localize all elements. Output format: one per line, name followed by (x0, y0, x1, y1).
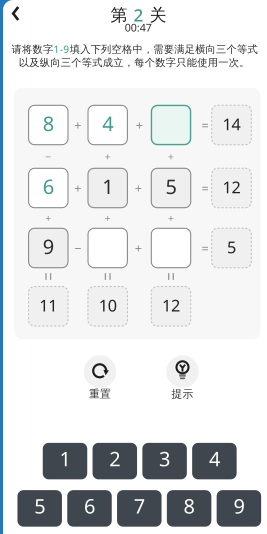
staticText: 以及纵向三个等式成立，每个数字只能使用一次。 (19, 56, 249, 69)
staticText: + (136, 116, 143, 134)
staticText: 3 (159, 445, 170, 472)
staticText: 5 (165, 173, 176, 200)
staticText: + (168, 211, 174, 225)
staticText: 4 (209, 445, 220, 472)
button[interactable]: 9 (217, 490, 261, 527)
staticText: 第 (110, 4, 127, 26)
button[interactable]: 7 (117, 490, 162, 527)
staticText: 5 (227, 236, 236, 258)
staticText: 12 (222, 176, 240, 198)
staticText: 9 (43, 233, 54, 260)
staticText: 1 (59, 445, 70, 472)
button[interactable]: Back (2, 0, 28, 26)
staticText: + (135, 239, 142, 257)
staticText: 8 (43, 110, 54, 137)
button[interactable]: 1 (43, 443, 87, 479)
staticText: + (45, 211, 51, 225)
button[interactable]: 4 (192, 443, 237, 479)
button[interactable]: 空格 (87, 228, 128, 268)
staticText: + (105, 211, 111, 225)
button[interactable]: 3 (142, 443, 187, 479)
staticText: 2 (133, 3, 143, 27)
button[interactable]: 2 (92, 443, 137, 479)
staticText: 4 (102, 110, 113, 137)
staticText: = (201, 239, 208, 257)
button[interactable]: 已选空格 (151, 105, 191, 145)
staticText: 6 (84, 492, 95, 519)
staticText: 7 (134, 492, 145, 519)
button[interactable]: 8 (167, 490, 211, 527)
staticText: + (74, 116, 81, 134)
staticText: 2 (109, 445, 120, 472)
staticText: 8 (184, 492, 195, 519)
staticText: + (135, 179, 142, 197)
staticText: 11 (39, 294, 57, 316)
staticText: = (201, 179, 208, 197)
staticText: 请将数字1-9填入下列空格中，需要满足横向三个等式 (12, 42, 257, 56)
staticText: 5 (34, 492, 45, 519)
staticText: 00:47 (125, 20, 152, 35)
staticText: 9 (233, 492, 244, 519)
staticText: + (74, 179, 81, 197)
button[interactable]: 6 (67, 490, 112, 527)
staticText: + (168, 149, 174, 163)
staticText: − (74, 239, 81, 257)
staticText: 14 (222, 113, 240, 135)
button[interactable]: 重置 (84, 355, 116, 388)
staticText: 提示 (171, 387, 193, 401)
staticText: 12 (162, 294, 180, 316)
button[interactable]: 8 (28, 105, 68, 145)
staticText: − (45, 149, 51, 163)
staticText: = (201, 116, 208, 134)
button[interactable]: 5 (17, 490, 62, 527)
button[interactable]: 提示 (166, 355, 199, 388)
staticText: 重置 (89, 387, 111, 401)
staticText: 6 (43, 173, 54, 200)
staticText: + (105, 149, 111, 163)
button[interactable]: 6 (28, 168, 68, 208)
button[interactable]: 4 (87, 105, 128, 145)
staticText: 10 (99, 294, 117, 316)
button[interactable]: 空格 (151, 228, 191, 268)
staticText: 1 (102, 173, 113, 200)
staticText: 关 (149, 4, 166, 26)
